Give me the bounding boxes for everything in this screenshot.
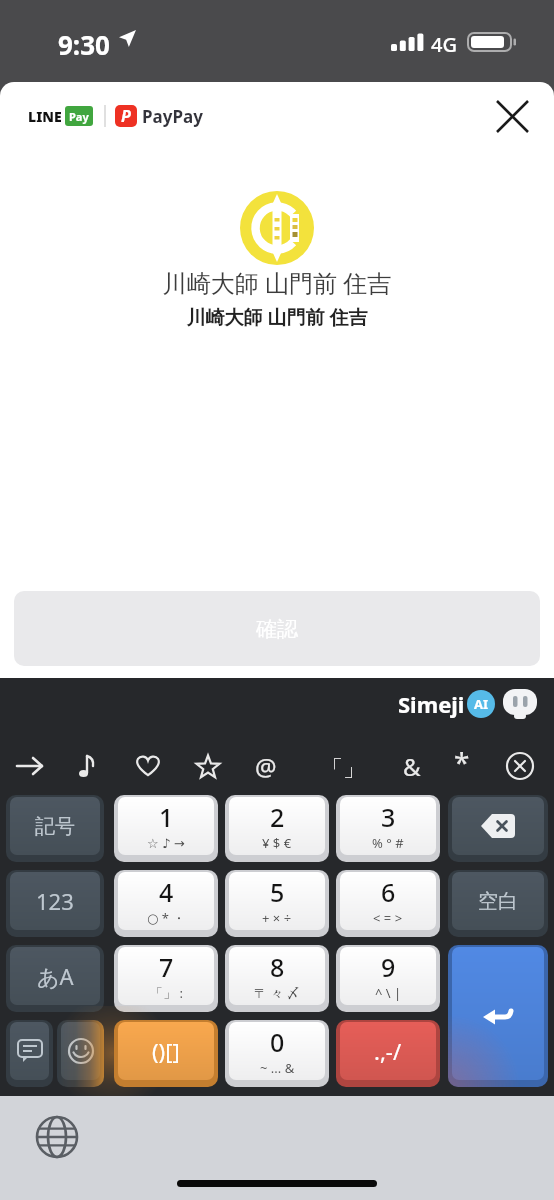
- button[interactable]: &: [390, 744, 434, 788]
- staticText: PayPay: [142, 105, 203, 128]
- button[interactable]: [8, 744, 52, 788]
- staticText: 6: [381, 875, 396, 909]
- staticText: 記号: [35, 814, 75, 839]
- button[interactable]: [57, 1020, 104, 1087]
- button[interactable]: 6: [336, 870, 440, 937]
- button[interactable]: 「」: [318, 744, 368, 794]
- staticText: &: [403, 750, 421, 783]
- button[interactable]: 空白: [448, 870, 548, 937]
- staticText: 0: [270, 1025, 285, 1059]
- staticText: *: [454, 743, 470, 781]
- staticText: ~ ... &: [260, 1059, 295, 1077]
- staticText: 9: [381, 950, 396, 984]
- button[interactable]: .,-/: [336, 1020, 440, 1087]
- button[interactable]: 3: [336, 795, 440, 862]
- button[interactable]: [32, 1112, 82, 1162]
- button[interactable]: あA: [6, 945, 104, 1012]
- staticText: AI: [474, 695, 489, 713]
- staticText: 「」: [321, 755, 365, 783]
- staticText: LINE: [28, 107, 62, 126]
- button[interactable]: [186, 744, 230, 788]
- staticText: % ° #: [372, 834, 404, 852]
- staticText: < = >: [373, 909, 403, 927]
- button[interactable]: 記号: [6, 795, 104, 862]
- staticText: ○ * ・: [147, 909, 186, 927]
- button[interactable]: 4: [114, 870, 218, 937]
- staticText: @: [255, 750, 277, 783]
- button[interactable]: 8: [225, 945, 329, 1012]
- button[interactable]: 123: [6, 870, 104, 937]
- staticText: P: [121, 105, 131, 127]
- button[interactable]: *: [440, 740, 484, 784]
- button[interactable]: [486, 90, 538, 142]
- staticText: 5: [270, 875, 285, 909]
- staticText: 123: [36, 886, 74, 916]
- staticText: 1: [159, 800, 174, 834]
- staticText: Simeji: [398, 689, 465, 719]
- staticText: ^ \ |: [375, 984, 402, 1002]
- staticText: 4G: [431, 31, 457, 58]
- button[interactable]: [126, 744, 170, 788]
- staticText: 〒 々 〆: [254, 984, 300, 1002]
- staticText: 「」 :: [150, 984, 183, 1002]
- button[interactable]: [498, 744, 542, 788]
- staticText: 川崎大師 山門前 住吉: [0, 304, 554, 330]
- staticText: 8: [270, 950, 285, 984]
- button[interactable]: 9: [336, 945, 440, 1012]
- staticText: .,-/: [374, 1036, 402, 1066]
- staticText: 川崎大師 山門前 住吉: [0, 266, 554, 299]
- button[interactable]: [448, 945, 548, 1087]
- button[interactable]: [66, 744, 110, 788]
- button[interactable]: [6, 1020, 53, 1087]
- staticText: Pay: [69, 109, 89, 124]
- staticText: 3: [381, 800, 396, 834]
- staticText: ¥ $ €: [262, 834, 292, 852]
- button[interactable]: LINE: [28, 102, 203, 130]
- button[interactable]: ()[]: [114, 1020, 218, 1087]
- button[interactable]: [448, 795, 548, 862]
- staticText: ☆ ♪ →: [147, 834, 185, 852]
- staticText: あA: [37, 961, 74, 991]
- button[interactable]: @: [244, 744, 288, 788]
- staticText: ()[]: [152, 1036, 180, 1066]
- staticText: 確認: [256, 616, 298, 642]
- button[interactable]: 1: [114, 795, 218, 862]
- staticText: 2: [270, 800, 285, 834]
- button[interactable]: 5: [225, 870, 329, 937]
- staticText: 空白: [478, 889, 518, 914]
- button[interactable]: 7: [114, 945, 218, 1012]
- staticText: 7: [159, 950, 174, 984]
- button[interactable]: 0: [225, 1020, 329, 1087]
- button[interactable]: 2: [225, 795, 329, 862]
- staticText: 4: [159, 875, 174, 909]
- staticText: 9:30: [58, 27, 110, 62]
- staticText: + × ÷: [262, 909, 292, 927]
